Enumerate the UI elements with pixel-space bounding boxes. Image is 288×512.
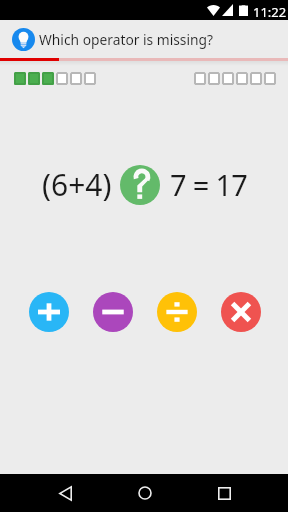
button[interactable]: Home	[126, 474, 163, 512]
button[interactable]: Divide	[157, 292, 197, 332]
button[interactable]: Recent apps	[206, 474, 243, 512]
staticText: 7 = 17	[170, 165, 248, 204]
button[interactable]: Back	[47, 474, 84, 512]
button[interactable]: Add	[29, 292, 69, 332]
staticText: (6+4)	[42, 164, 112, 205]
staticText: Which operator is missing?	[39, 30, 214, 49]
button[interactable]: Multiply	[221, 292, 261, 332]
staticText: 11:22	[253, 3, 287, 21]
button[interactable]: Subtract	[93, 292, 133, 332]
button[interactable]: Which operator is missing?	[12, 20, 288, 58]
